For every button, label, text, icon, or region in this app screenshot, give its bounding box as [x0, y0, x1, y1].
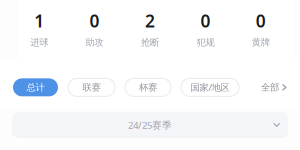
- staticText: 助攻: [86, 37, 104, 48]
- staticText: 24/25赛季: [128, 118, 172, 132]
- staticText: 1: [34, 9, 44, 33]
- staticText: 0: [200, 9, 210, 33]
- staticText: 黄牌: [252, 37, 270, 48]
- staticText: 进球: [30, 37, 48, 48]
- staticText: 联赛: [82, 81, 100, 93]
- button[interactable]: 杯赛: [125, 78, 171, 96]
- button[interactable]: 全部: [261, 81, 287, 93]
- staticText: 抢断: [141, 37, 159, 48]
- staticText: 2: [145, 9, 155, 33]
- staticText: 国家/地区: [190, 81, 229, 94]
- button[interactable]: 联赛: [68, 78, 115, 96]
- staticText: 犯规: [196, 37, 214, 48]
- staticText: 全部: [261, 81, 279, 93]
- staticText: 杯赛: [139, 81, 157, 93]
- staticText: 0: [90, 9, 100, 33]
- staticText: 0: [256, 9, 266, 33]
- button[interactable]: 国家/地区: [181, 78, 239, 96]
- button[interactable]: 24/25赛季: [12, 112, 288, 138]
- staticText: 总计: [26, 81, 44, 93]
- button[interactable]: 总计: [13, 78, 58, 96]
